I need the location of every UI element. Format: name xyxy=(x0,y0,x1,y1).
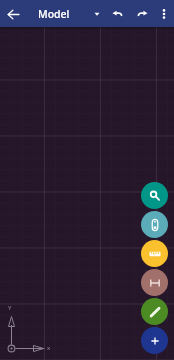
button[interactable]: Measure xyxy=(141,240,168,267)
button[interactable]: Dimension xyxy=(141,211,168,238)
button[interactable]: Back xyxy=(0,1,26,27)
button[interactable]: Select model xyxy=(84,1,109,27)
staticText: Model xyxy=(38,7,70,21)
button[interactable]: Redo xyxy=(130,1,155,27)
button[interactable]: Draw xyxy=(141,298,168,325)
staticText: Y xyxy=(8,304,12,312)
button[interactable]: Beam xyxy=(141,269,168,296)
button[interactable]: Add xyxy=(141,327,168,354)
button[interactable]: More options xyxy=(153,1,174,27)
staticText: x xyxy=(47,344,51,352)
button[interactable]: Search xyxy=(141,182,168,209)
button[interactable]: Undo xyxy=(105,1,130,27)
